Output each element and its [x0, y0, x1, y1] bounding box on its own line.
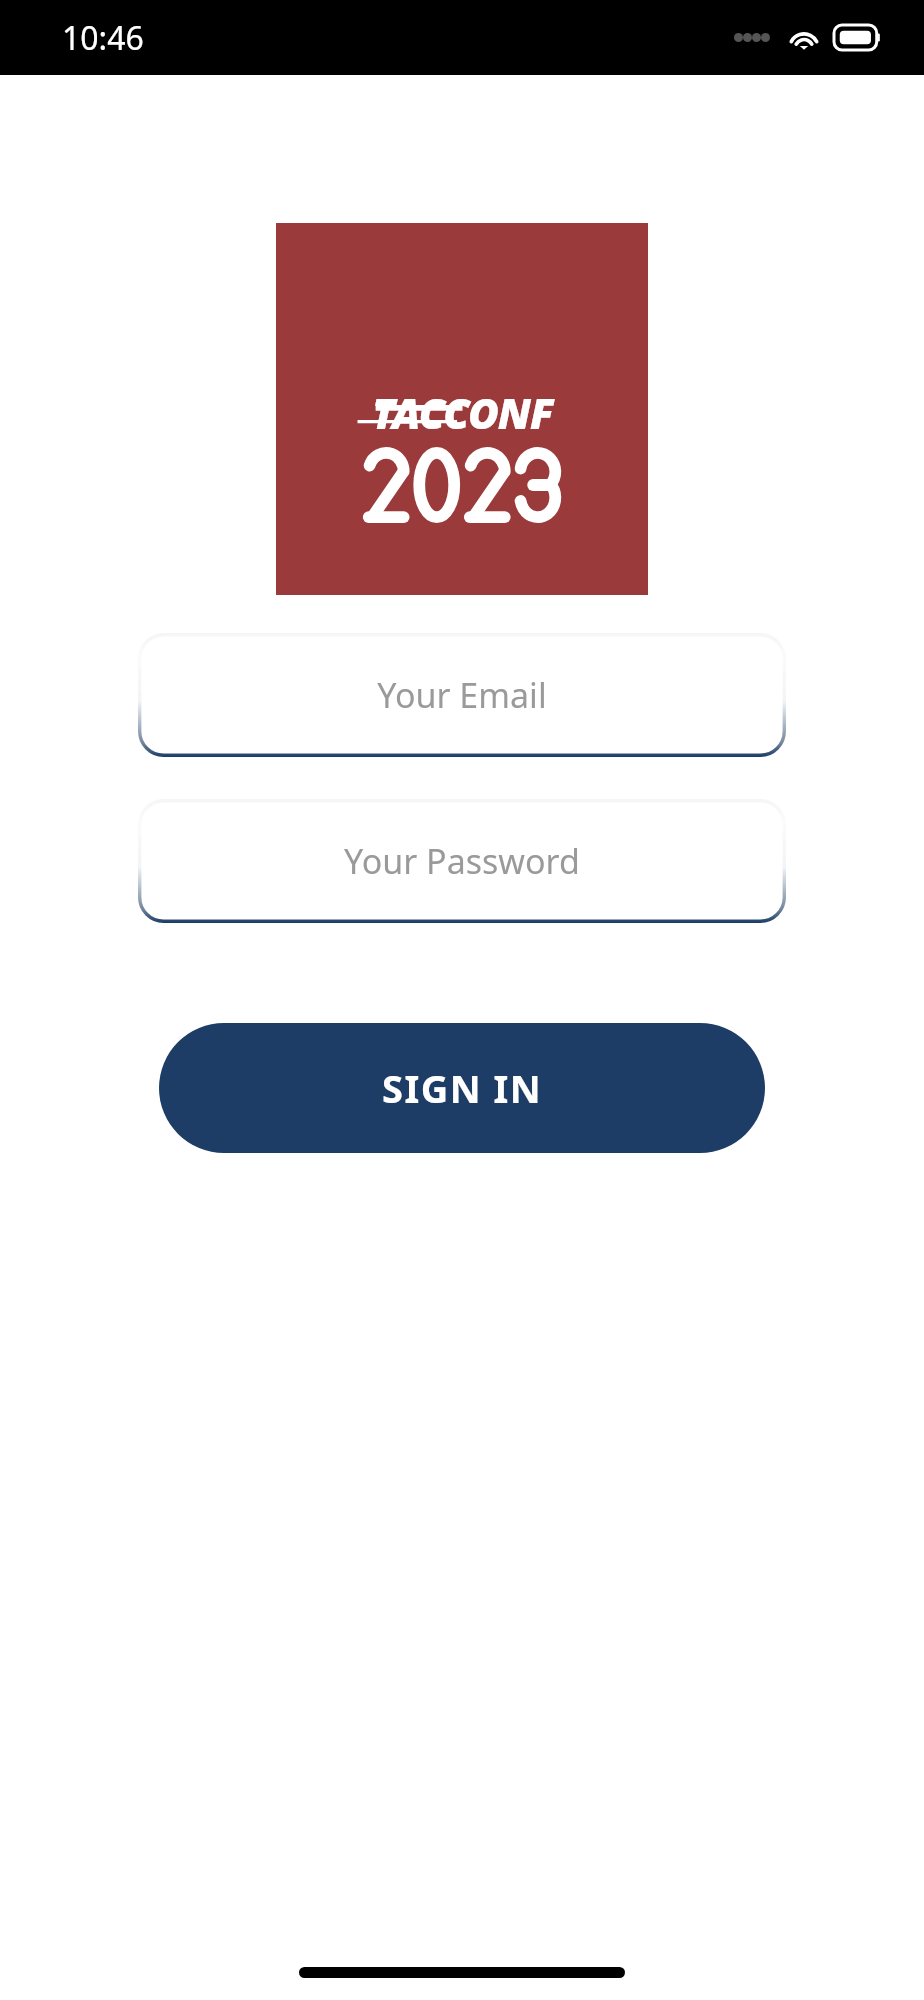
other: Home indicator: [299, 1967, 625, 1978]
staticText: Your Email: [377, 672, 547, 718]
button[interactable]: Your Password: [138, 799, 786, 923]
staticText: 10:46: [62, 16, 144, 60]
staticText: TACCONF: [372, 384, 553, 441]
staticText: Your Password: [344, 838, 580, 884]
button[interactable]: SIGN IN: [159, 1023, 765, 1153]
staticText: SIGN IN: [382, 1062, 543, 1114]
button[interactable]: Your Email: [138, 633, 786, 757]
